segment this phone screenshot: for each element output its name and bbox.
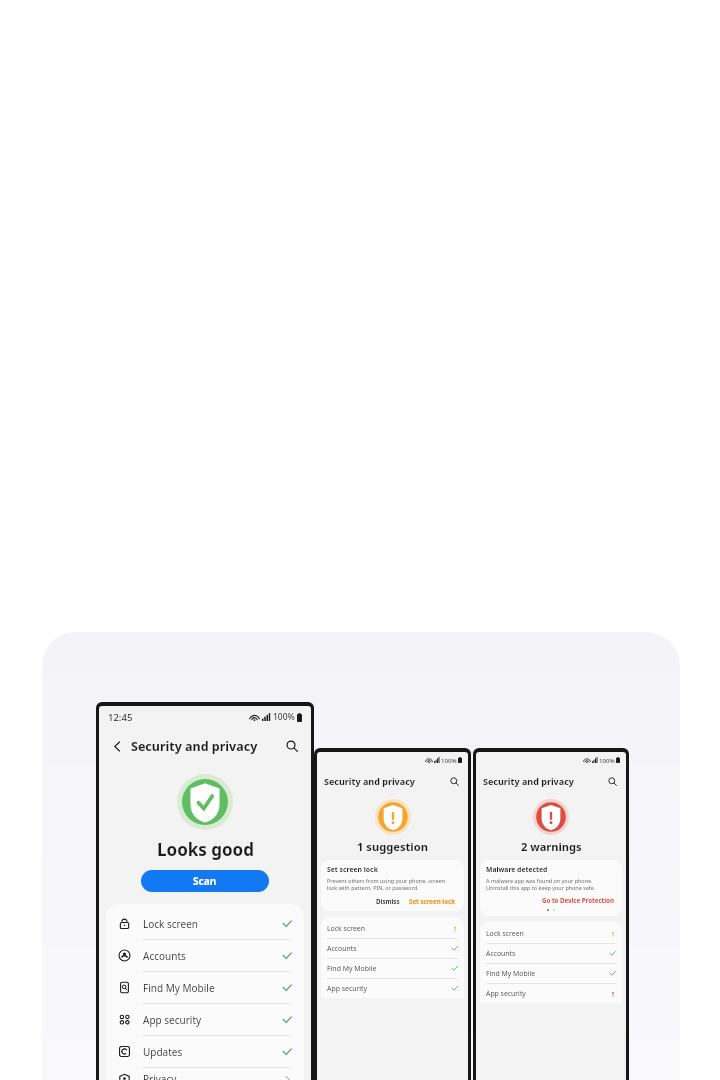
staticText: Set screen lock xyxy=(409,897,456,905)
staticText: Dismiss xyxy=(376,897,400,905)
button[interactable]: Go to Device Protection xyxy=(540,895,616,905)
button[interactable]: Find My Mobile xyxy=(106,972,304,1003)
staticText: Security and privacy xyxy=(324,775,415,787)
button[interactable]: Privacy xyxy=(106,1068,304,1080)
staticText: Find My Mobile xyxy=(486,969,536,978)
button[interactable]: Search xyxy=(606,775,619,788)
staticText: Accounts xyxy=(143,949,186,963)
staticText: Lock screen xyxy=(327,924,365,933)
staticText: Set screen lock xyxy=(327,865,378,874)
button[interactable]: App security xyxy=(480,984,622,1003)
button[interactable]: Accounts xyxy=(106,940,304,971)
staticText: 2 warnings xyxy=(521,839,582,854)
button[interactable]: Accounts xyxy=(480,944,622,963)
button[interactable]: Find My Mobile xyxy=(480,964,622,983)
button[interactable]: Updates xyxy=(106,1036,304,1067)
button[interactable]: Find My Mobile xyxy=(321,959,464,978)
staticText: Find My Mobile xyxy=(143,981,215,995)
staticText: Lock screen xyxy=(486,929,524,938)
staticText: App security xyxy=(486,989,526,998)
button[interactable]: Scan xyxy=(141,870,269,892)
staticText: 100% xyxy=(441,756,457,764)
staticText: Privacy xyxy=(143,1072,177,1080)
staticText: 12:45 xyxy=(108,711,133,724)
staticText: 1 suggestion xyxy=(357,839,428,854)
staticText: Malware detected xyxy=(486,865,548,874)
button[interactable]: Set screen lock xyxy=(407,896,458,906)
staticText: A malware app was found on your phone. U… xyxy=(486,877,596,891)
button[interactable]: Lock screen xyxy=(106,908,304,939)
button[interactable]: Dismiss xyxy=(374,896,402,906)
staticText: Find My Mobile xyxy=(327,964,377,973)
staticText: Updates xyxy=(143,1045,183,1059)
button[interactable]: Search xyxy=(283,737,301,755)
staticText: 100% xyxy=(599,756,615,764)
staticText: App security xyxy=(143,1013,202,1027)
staticText: Prevent others from using your phone, sc… xyxy=(327,877,446,892)
button[interactable]: App security xyxy=(106,1004,304,1035)
button[interactable]: Search xyxy=(448,775,461,788)
staticText: Security and privacy xyxy=(483,775,574,787)
button[interactable]: Lock screen xyxy=(321,919,464,938)
staticText: Lock screen xyxy=(143,917,199,931)
button[interactable]: Back xyxy=(109,738,125,754)
button[interactable]: Lock screen xyxy=(480,924,622,943)
staticText: 100% xyxy=(273,711,295,723)
staticText: Accounts xyxy=(486,949,516,958)
staticText: App security xyxy=(327,984,368,993)
button[interactable]: App security xyxy=(321,979,464,998)
staticText: Looks good xyxy=(157,838,254,861)
staticText: Go to Device Protection xyxy=(542,896,614,904)
staticText: Accounts xyxy=(327,944,357,953)
button[interactable]: Accounts xyxy=(321,939,464,958)
staticText: Scan xyxy=(193,874,217,888)
staticText: Security and privacy xyxy=(131,738,258,755)
